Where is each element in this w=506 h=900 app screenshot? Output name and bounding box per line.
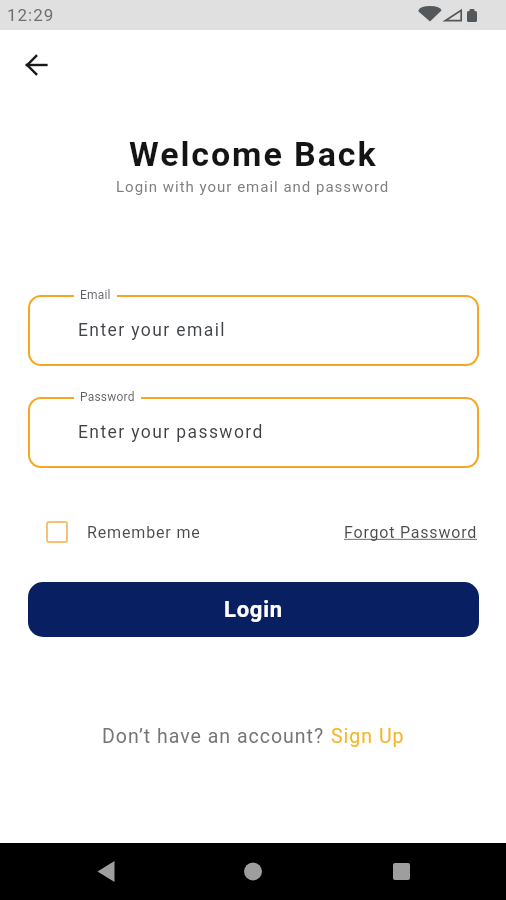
staticText: Enter your password xyxy=(78,422,264,443)
staticText: Password xyxy=(80,390,135,404)
button[interactable]: Remember me xyxy=(46,521,201,543)
button[interactable]: Enter your password xyxy=(28,397,479,468)
button[interactable] xyxy=(168,843,337,900)
staticText: Login xyxy=(224,597,283,623)
button[interactable]: Enter your email xyxy=(28,295,479,366)
button[interactable]: Sign Up xyxy=(331,725,405,748)
staticText: Welcome Back xyxy=(129,134,378,174)
staticText: Email xyxy=(80,288,111,302)
staticText: Login with your email and password xyxy=(116,178,390,196)
staticText: Remember me xyxy=(87,523,201,542)
staticText: Enter your email xyxy=(78,320,226,341)
button[interactable] xyxy=(0,843,168,900)
button[interactable]: Forgot Password xyxy=(344,523,478,542)
button[interactable] xyxy=(337,843,506,900)
button[interactable] xyxy=(15,43,59,87)
staticText: Don’t have an account? xyxy=(102,725,331,748)
button[interactable]: Login xyxy=(28,582,479,637)
staticText: 12:29 xyxy=(7,5,55,25)
